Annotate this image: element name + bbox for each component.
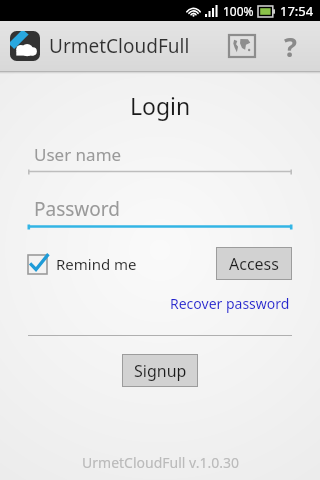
staticText: User name bbox=[34, 143, 122, 166]
staticText: Password bbox=[34, 196, 120, 222]
staticText: UrmetCloudFull bbox=[49, 33, 190, 59]
button[interactable]: Remind me bbox=[28, 254, 137, 274]
staticText: 17:54 bbox=[280, 2, 314, 20]
button[interactable]: Password bbox=[28, 196, 292, 229]
button[interactable]: Access bbox=[216, 247, 292, 280]
button[interactable]: Help bbox=[272, 28, 308, 64]
staticText: Recover password bbox=[170, 294, 290, 313]
staticText: Remind me bbox=[56, 254, 137, 274]
staticText: ? bbox=[284, 28, 297, 64]
button[interactable]: Signup bbox=[122, 354, 198, 387]
button[interactable]: Language bbox=[222, 26, 262, 66]
staticText: Signup bbox=[134, 360, 187, 382]
button[interactable]: Recover password bbox=[168, 292, 292, 315]
staticText: UrmetCloudFull v.1.0.30 bbox=[82, 453, 239, 472]
staticText: 100% bbox=[223, 3, 254, 19]
staticText: Access bbox=[229, 253, 279, 275]
staticText: Login bbox=[130, 90, 191, 121]
button[interactable]: User name bbox=[28, 141, 292, 174]
